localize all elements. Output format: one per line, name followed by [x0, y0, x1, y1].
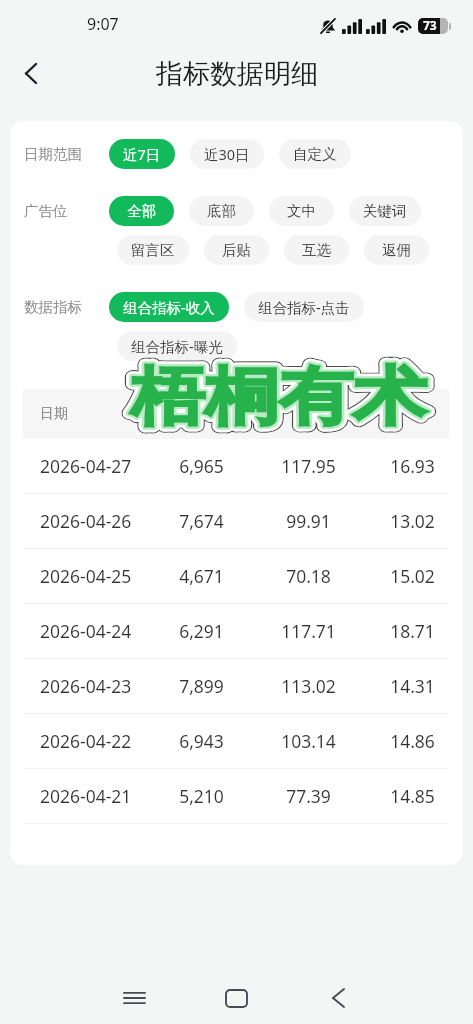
staticText: 70.18: [286, 564, 331, 588]
staticText: 2026-04-25: [40, 564, 132, 588]
staticText: 6,965: [179, 454, 224, 478]
staticText: 文中: [287, 202, 316, 220]
staticText: 关键词: [363, 202, 407, 220]
staticText: 留言区: [131, 241, 175, 259]
staticText: 梧桐有术: [131, 358, 427, 437]
button[interactable]: 返佣: [364, 235, 429, 265]
staticText: 2026-04-23: [40, 674, 132, 698]
staticText: 互选: [302, 241, 331, 259]
staticText: 5,210: [179, 784, 224, 808]
button[interactable]: 组合指标-点击: [244, 292, 364, 322]
staticText: 组合指标-点击: [258, 297, 350, 317]
staticText: 6,291: [179, 619, 224, 643]
staticText: 近30日: [204, 144, 250, 164]
staticText: 梧桐有术: [131, 358, 427, 437]
staticText: 组合指标-收入: [123, 297, 215, 317]
staticText: 全部: [127, 202, 156, 220]
staticText: 103.14: [281, 729, 336, 753]
button[interactable]: 组合指标-曝光: [117, 331, 237, 361]
staticText: 7,899: [179, 674, 224, 698]
button[interactable]: 留言区: [117, 235, 189, 265]
staticText: 梧桐有术: [131, 358, 427, 437]
button[interactable]: Back: [9, 51, 53, 95]
staticText: 近7日: [123, 144, 161, 164]
button[interactable]: 组合指标-收入: [109, 292, 229, 322]
staticText: 2026-04-24: [40, 619, 132, 643]
button[interactable]: Recent apps: [110, 974, 158, 1022]
staticText: 77.39: [286, 784, 331, 808]
button[interactable]: 底部: [189, 196, 254, 226]
staticText: 4,671: [179, 564, 224, 588]
staticText: 数据指标: [24, 298, 82, 316]
staticText: 组合指标-曝光: [131, 336, 223, 356]
staticText: 日期: [40, 405, 68, 423]
staticText: 15.02: [390, 564, 435, 588]
button[interactable]: 自定义: [279, 139, 351, 169]
staticText: 返佣: [382, 241, 411, 259]
staticText: 14.85: [390, 784, 435, 808]
staticText: 73: [423, 18, 437, 33]
staticText: 2026-04-26: [40, 509, 132, 533]
staticText: 6,943: [179, 729, 224, 753]
button[interactable]: 关键词: [349, 196, 421, 226]
staticText: 日期范围: [24, 145, 82, 163]
button[interactable]: 后贴: [204, 235, 269, 265]
staticText: 14.86: [390, 729, 435, 753]
staticText: 7,674: [179, 509, 224, 533]
staticText: 113.02: [281, 674, 336, 698]
button[interactable]: Home: [212, 974, 260, 1022]
staticText: 广告位: [24, 202, 68, 220]
staticText: 117.71: [281, 619, 336, 643]
staticText: 梧桐有术: [131, 358, 427, 437]
staticText: 2026-04-27: [40, 454, 132, 478]
staticText: 16.93: [390, 454, 435, 478]
button[interactable]: Back: [314, 974, 362, 1022]
staticText: 2026-04-21: [40, 784, 132, 808]
button[interactable]: 文中: [269, 196, 334, 226]
staticText: 18.71: [390, 619, 435, 643]
button[interactable]: 近30日: [190, 139, 264, 169]
staticText: 后贴: [222, 241, 251, 259]
staticText: 底部: [207, 202, 236, 220]
staticText: 9:07: [87, 13, 119, 35]
staticText: 指标数据明细: [156, 57, 318, 91]
staticText: 13.02: [390, 509, 435, 533]
staticText: 99.91: [286, 509, 331, 533]
button[interactable]: 互选: [284, 235, 349, 265]
staticText: 14.31: [390, 674, 435, 698]
staticText: 2026-04-22: [40, 729, 132, 753]
staticText: 117.95: [281, 454, 336, 478]
button[interactable]: 近7日: [109, 139, 175, 169]
button[interactable]: 全部: [109, 196, 174, 226]
staticText: 自定义: [293, 145, 337, 163]
